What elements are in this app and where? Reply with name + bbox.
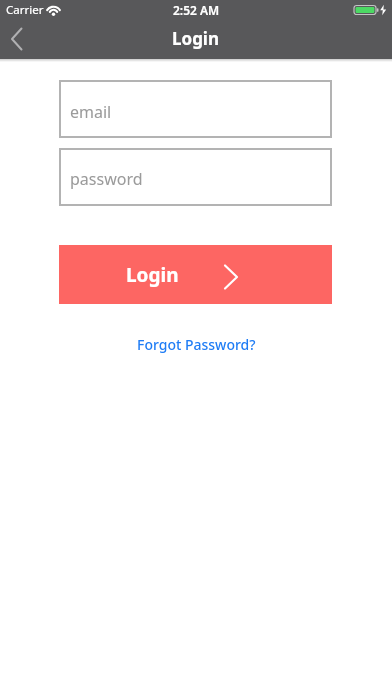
button[interactable]: email (59, 80, 332, 138)
button[interactable]: Login (59, 245, 332, 304)
staticText: email (70, 101, 112, 123)
staticText: 2:52 AM (173, 2, 220, 18)
staticText: Login (172, 27, 220, 50)
staticText: Login (126, 262, 179, 288)
staticText: Forgot Password? (137, 335, 256, 354)
button[interactable]: Forgot Password? (133, 331, 260, 358)
button[interactable] (0, 24, 34, 59)
staticText: Carrier (6, 2, 44, 18)
button[interactable]: password (59, 148, 332, 206)
staticText: password (70, 168, 143, 190)
